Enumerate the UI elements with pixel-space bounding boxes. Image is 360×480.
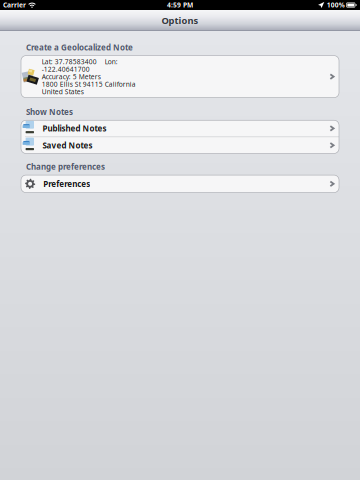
button[interactable]: Lat: 37.78583400 Lon: — [21, 56, 339, 98]
staticText: 4:59 PM — [167, 1, 193, 9]
staticText: 1800 Ellis St 94115 California — [42, 80, 136, 89]
staticText: 100% — [327, 1, 345, 9]
staticText: Lat: 37.78583400 Lon: — [42, 57, 118, 66]
staticText: United States — [42, 87, 84, 96]
button[interactable]: Published Notes — [21, 120, 339, 136]
staticText: -122.40641700 — [42, 65, 90, 74]
staticText: Published Notes — [43, 123, 107, 134]
staticText: Accuracy: 5 Meters — [42, 72, 101, 81]
button[interactable]: Preferences — [21, 175, 339, 193]
button[interactable]: Saved Notes — [21, 137, 339, 153]
staticText: Change preferences — [26, 161, 105, 172]
staticText: Create a Geolocalized Note — [26, 42, 133, 53]
staticText: Preferences — [43, 178, 90, 189]
staticText: Saved Notes — [43, 140, 93, 151]
staticText: Carrier — [3, 1, 26, 9]
staticText: Show Notes — [26, 107, 73, 117]
staticText: Options — [161, 14, 198, 27]
